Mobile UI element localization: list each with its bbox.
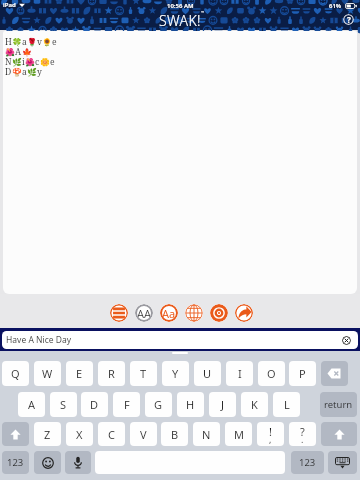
button[interactable]: L (273, 392, 300, 417)
staticText: 🌼 (40, 58, 50, 67)
button[interactable]: G (145, 392, 172, 417)
staticText: a (22, 66, 27, 78)
button[interactable]: Shift (2, 422, 29, 446)
button[interactable]: Share (235, 304, 253, 322)
button[interactable]: J (209, 392, 236, 417)
button[interactable]: C (98, 422, 125, 446)
button[interactable]: F (113, 392, 140, 417)
button[interactable]: O (258, 361, 285, 386)
staticText: AA (137, 306, 152, 321)
staticText: U (203, 366, 212, 381)
staticText: 🍁 (22, 48, 32, 57)
staticText: 61% (329, 2, 342, 10)
button[interactable]: P (289, 361, 316, 386)
button[interactable]: Backspace (321, 361, 348, 386)
button[interactable]: Emoji (34, 451, 61, 474)
staticText: i (22, 56, 25, 68)
button[interactable]: U (194, 361, 221, 386)
staticText: R (108, 366, 115, 381)
staticText: c (35, 56, 40, 68)
staticText: J (221, 397, 225, 412)
button[interactable]: Language (185, 304, 203, 322)
button[interactable]: V (130, 422, 157, 446)
button[interactable]: Shift (321, 422, 357, 446)
button[interactable]: S (50, 392, 77, 417)
staticText: 🍀 (12, 38, 22, 47)
staticText: Have A Nice Day (6, 334, 72, 346)
staticText: G (154, 397, 163, 412)
staticText: a (22, 36, 27, 48)
staticText: e (52, 36, 57, 48)
button[interactable]: Clear text (342, 336, 351, 345)
button[interactable]: Q (2, 361, 29, 386)
button[interactable]: M (225, 422, 252, 446)
button[interactable]: Font size (135, 304, 153, 322)
button[interactable]: Have A Nice Day (2, 331, 358, 349)
button[interactable]: K (241, 392, 268, 417)
button[interactable]: Text style (160, 304, 178, 322)
button[interactable]: Record (210, 304, 228, 322)
staticText: . (301, 433, 304, 445)
staticText: 123 (7, 456, 24, 469)
staticText: I (238, 366, 242, 381)
staticText: Q (11, 366, 20, 381)
staticText: e (50, 56, 55, 68)
staticText: 🌿 (12, 58, 22, 67)
staticText: 10:56 AM (167, 2, 194, 10)
staticText: W (42, 366, 53, 381)
button[interactable]: return (320, 392, 357, 417)
staticText: L (284, 397, 290, 412)
staticText: iPad (3, 1, 16, 9)
staticText: SWAK! (159, 11, 201, 30)
staticText: D (90, 397, 99, 412)
staticText: ™ (201, 10, 205, 15)
staticText: 🍄 (12, 68, 22, 77)
staticText: P (299, 366, 306, 381)
button[interactable]: 123 (2, 451, 29, 474)
staticText: K (251, 397, 258, 412)
staticText: T (140, 366, 147, 381)
button[interactable]: I (226, 361, 253, 386)
staticText: C (108, 427, 115, 442)
staticText: B (171, 427, 179, 442)
staticText: M (234, 427, 244, 442)
button[interactable]: Help (343, 14, 354, 25)
button[interactable]: Dictation (65, 451, 91, 474)
button[interactable]: T (130, 361, 157, 386)
staticText: A (28, 397, 36, 412)
staticText: D (5, 66, 12, 78)
button[interactable]: B (161, 422, 188, 446)
button[interactable]: A (18, 392, 45, 417)
staticText: F (124, 397, 130, 412)
button[interactable]: D (81, 392, 108, 417)
button[interactable]: N (193, 422, 220, 446)
staticText: N (5, 56, 12, 68)
staticText: S (60, 397, 67, 412)
button[interactable]: List (110, 304, 128, 322)
staticText: E (76, 366, 83, 381)
button[interactable]: 123 (291, 451, 324, 474)
button[interactable]: E (66, 361, 93, 386)
button[interactable]: Y (162, 361, 189, 386)
button[interactable]: Hide keyboard (328, 451, 357, 474)
button[interactable]: H (177, 392, 204, 417)
staticText: 🌿 (27, 68, 37, 77)
staticText: ! (269, 424, 272, 439)
button[interactable]: X (66, 422, 93, 446)
staticText: H (5, 36, 12, 48)
button[interactable]: ? (289, 422, 316, 446)
button[interactable]: W (34, 361, 61, 386)
button[interactable]: Z (34, 422, 61, 446)
staticText: Y (172, 366, 179, 381)
staticText: Aa (162, 306, 176, 321)
staticText: y (37, 66, 42, 78)
staticText: return (324, 398, 353, 411)
staticText: O (267, 366, 276, 381)
staticText: 🌺 (5, 48, 15, 57)
button[interactable]: ! (257, 422, 284, 446)
staticText: 🌹 (27, 38, 37, 47)
button[interactable]: R (98, 361, 125, 386)
staticText: X (76, 427, 83, 442)
staticText: 123 (299, 456, 316, 469)
